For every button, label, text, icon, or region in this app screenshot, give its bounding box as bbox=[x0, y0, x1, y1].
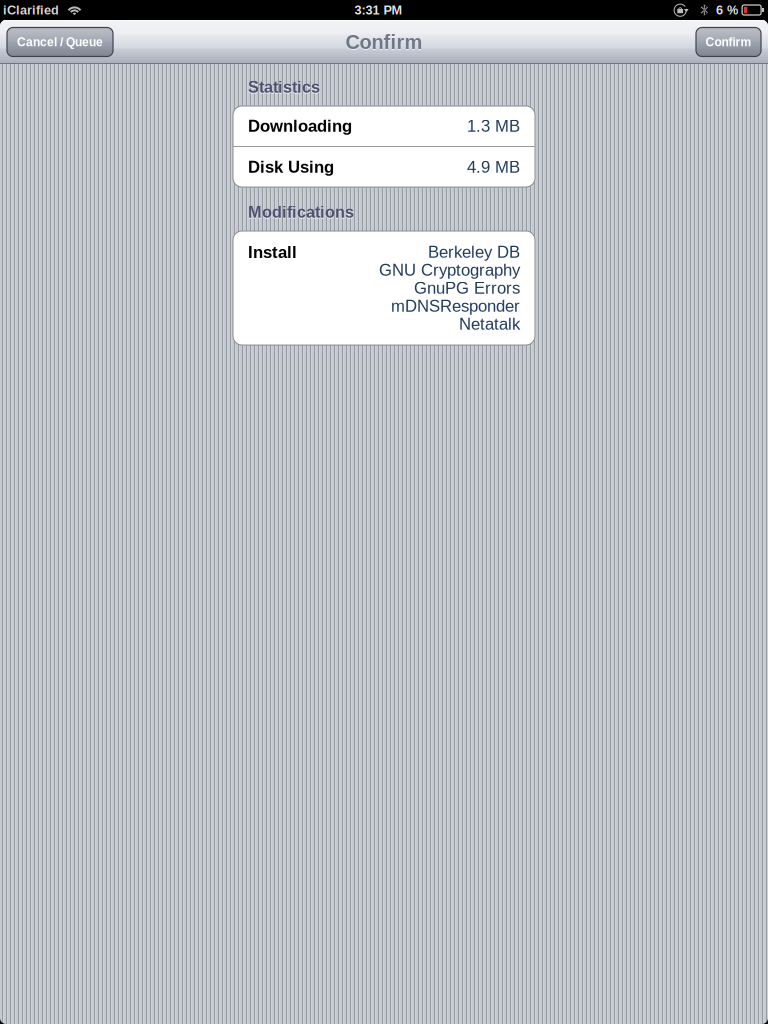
staticText: GNU Cryptography bbox=[379, 261, 520, 279]
staticText: Statistics bbox=[248, 79, 320, 97]
staticText: 4.9 MB bbox=[467, 158, 520, 176]
staticText: Netatalk bbox=[459, 315, 520, 333]
staticText: iClarified bbox=[3, 3, 59, 17]
staticText: 6 % bbox=[716, 3, 738, 17]
staticText: Berkeley DB bbox=[428, 243, 520, 261]
button[interactable]: Confirm bbox=[696, 27, 761, 56]
staticText: mDNSResponder bbox=[391, 297, 520, 315]
staticText: GnuPG Errors bbox=[414, 279, 520, 297]
staticText: Install bbox=[248, 243, 297, 262]
staticText: Modifications bbox=[248, 203, 354, 221]
staticText: Cancel / Queue bbox=[17, 35, 103, 49]
staticText: Statistics bbox=[248, 78, 320, 96]
staticText: Downloading bbox=[248, 117, 352, 135]
staticText: Confirm bbox=[345, 31, 422, 53]
staticText: Modifications bbox=[248, 204, 354, 222]
staticText: Confirm bbox=[345, 32, 422, 54]
staticText: 3:31 PM bbox=[354, 3, 402, 17]
button[interactable]: Cancel / Queue bbox=[7, 27, 113, 56]
staticText: 1.3 MB bbox=[467, 117, 520, 135]
staticText: Confirm bbox=[705, 35, 751, 49]
staticText: Disk Using bbox=[248, 158, 334, 176]
